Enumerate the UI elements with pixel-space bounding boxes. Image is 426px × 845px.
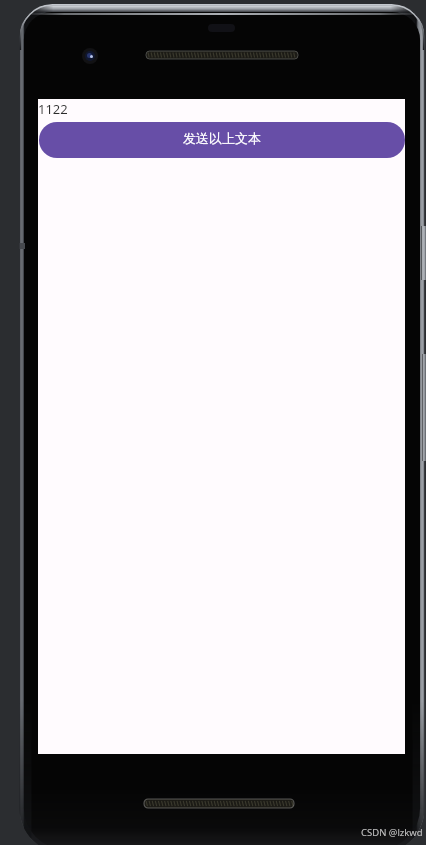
button[interactable]: 发送以上文本	[39, 122, 405, 158]
staticText: 发送以上文本	[183, 130, 261, 146]
staticText: CSDN @lzkwd	[361, 826, 423, 839]
staticText: 1122	[38, 100, 68, 118]
